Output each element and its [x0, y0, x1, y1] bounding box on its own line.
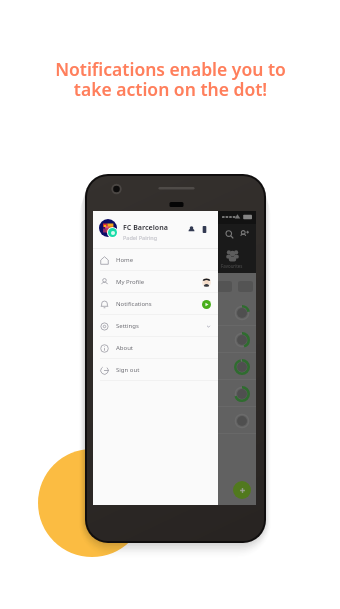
button[interactable]: Settings [93, 315, 218, 337]
staticText: Favourites [221, 263, 243, 269]
button[interactable]: My Profile [93, 271, 218, 293]
button[interactable]: Lou [95, 353, 256, 380]
button[interactable] [237, 280, 254, 293]
staticText: Lou [96, 363, 106, 370]
staticText: About [116, 344, 134, 352]
button[interactable]: Home [93, 249, 218, 271]
button[interactable]: Add [233, 481, 251, 499]
button[interactable] [216, 280, 233, 293]
button[interactable]: Lou [95, 299, 256, 326]
button[interactable]: Teams [198, 223, 210, 235]
button[interactable]: Invite [185, 223, 197, 235]
staticText: Notifications enable you to take action … [55, 57, 286, 102]
button[interactable]: Add person [238, 228, 251, 241]
button[interactable]: Notifications [93, 293, 218, 315]
staticText: Sign out [116, 366, 140, 374]
button[interactable]: Sign out [93, 359, 218, 381]
button[interactable]: Search [223, 228, 236, 241]
button[interactable]: Favourites [213, 249, 251, 269]
staticText: FC Barcelona [123, 223, 168, 233]
staticText: Settings [116, 322, 139, 330]
staticText: Home [116, 256, 134, 264]
staticText: My Profile [116, 278, 145, 286]
button[interactable]: Lou [95, 380, 256, 407]
staticText: Notifications [116, 300, 152, 308]
button[interactable]: About [93, 337, 218, 359]
button[interactable]: Lou [95, 326, 256, 353]
staticText: Padel Pairing [123, 234, 158, 241]
button[interactable]: Lou [95, 407, 256, 434]
